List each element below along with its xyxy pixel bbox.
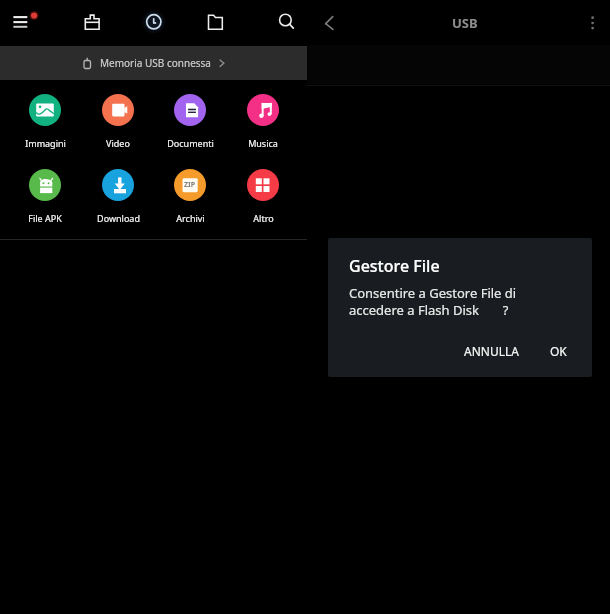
button[interactable]: Musica [227,94,299,149]
staticText: Memoria USB connessa [100,56,211,70]
staticText: OK [550,343,567,359]
button[interactable]: Menu [8,7,38,37]
staticText: Archivi [176,212,205,224]
button[interactable]: Altro [227,169,299,224]
button[interactable]: Documenti [154,94,226,149]
staticText: Immagini [25,137,66,149]
button[interactable]: More options [577,7,607,37]
staticText: File APK [28,212,62,224]
button[interactable]: Immagini [9,94,81,149]
staticText: ANNULLA [464,343,519,359]
staticText: Download [97,212,140,224]
button[interactable]: File APK [9,169,81,224]
button[interactable]: Download [82,169,154,224]
staticText: Documenti [167,137,214,149]
staticText: USB [452,14,478,32]
staticText: Gestore File [349,255,440,277]
button[interactable]: Files [200,7,230,37]
button[interactable]: Search [271,7,301,37]
staticText: Video [106,137,130,149]
staticText: ZIP [184,180,196,190]
staticText: Consentire a Gestore File di accedere a … [349,284,517,319]
button[interactable]: Cleaner [77,7,107,37]
button[interactable]: ANNULLA [452,334,531,368]
button[interactable]: Video [82,94,154,149]
button[interactable]: OK [538,334,579,368]
button[interactable]: Memoria USB connessa [0,46,307,80]
button[interactable]: ZIP [154,169,226,224]
staticText: Altro [253,212,274,224]
staticText: Musica [248,137,278,149]
button[interactable]: Recent [139,7,169,37]
button[interactable]: Back [315,7,345,37]
